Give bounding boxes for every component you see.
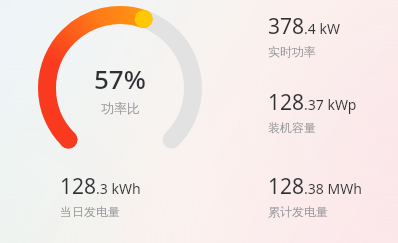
staticText: 累计发电量 <box>268 204 328 219</box>
staticText: 装机容量 <box>268 120 316 135</box>
staticText: 当日发电量 <box>60 204 120 219</box>
staticText: 128.38 MWh <box>268 172 362 201</box>
button[interactable]: 128.37 kWp <box>268 88 394 135</box>
staticText: 128.3 kWh <box>60 172 141 201</box>
staticText: 378.4 kW <box>268 12 340 41</box>
button[interactable]: Power ratio gauge 57 percent <box>38 6 202 170</box>
button[interactable]: 378.4 kW <box>268 12 394 59</box>
button[interactable]: 128.38 MWh <box>268 172 398 219</box>
staticText: 128.37 kWp <box>268 88 357 117</box>
staticText: 实时功率 <box>268 44 316 59</box>
staticText: 功率比 <box>101 100 140 116</box>
staticText: 57% <box>94 61 146 96</box>
button[interactable]: 128.3 kWh <box>60 172 190 219</box>
